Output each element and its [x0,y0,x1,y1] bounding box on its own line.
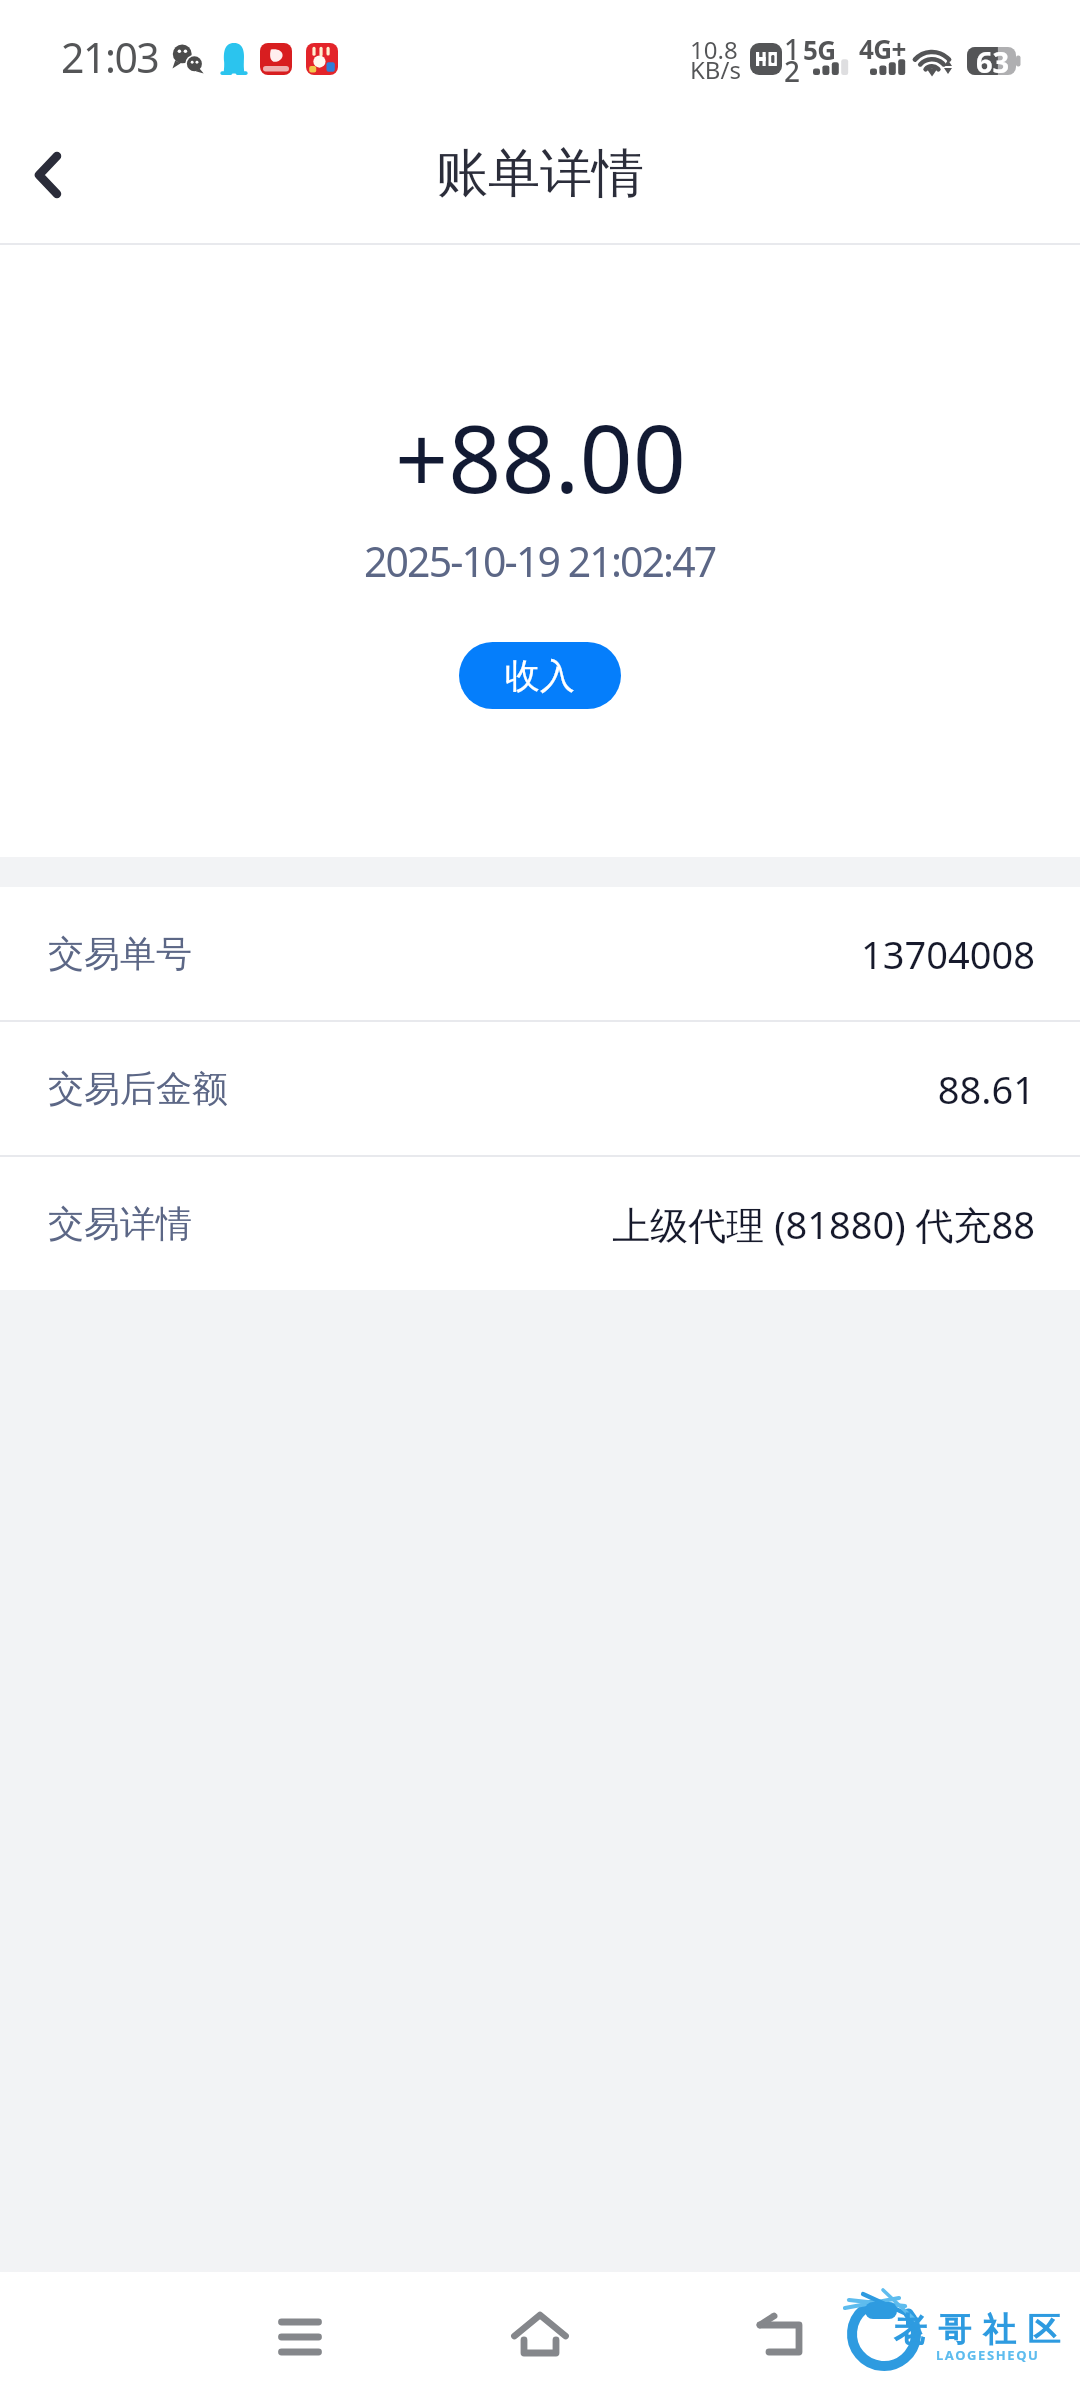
button[interactable]: 交易单号 [0,887,1080,1020]
staticText: 88.61 [937,1063,1035,1115]
button[interactable]: 收入 [459,642,621,709]
button[interactable]: 交易详情 [0,1157,1080,1290]
button[interactable]: Back [720,2277,840,2397]
staticText: LAOGESHEQU [936,2346,1040,2364]
staticText: 5G [803,32,836,67]
staticText: 交易单号 [48,931,192,976]
staticText: 老哥社区 [888,2309,1066,2351]
staticText: 交易后金额 [48,1066,228,1111]
staticText: +88.00 [395,394,686,521]
staticText: 10.8 [690,33,738,66]
staticText: 上级代理 (81880) 代充88 [612,1198,1035,1250]
staticText: 4G+ [859,31,906,66]
staticText: KB/s [690,53,741,86]
staticText: 2025-10-19 21:02:47 [364,533,716,589]
button[interactable]: Home [480,2277,600,2397]
staticText: 2 [784,52,801,90]
button[interactable]: 交易后金额 [0,1022,1080,1155]
staticText: 1 [784,30,801,68]
staticText: 收入 [505,654,575,698]
staticText: 交易详情 [48,1201,192,1246]
staticText: 账单详情 [436,141,644,207]
staticText: 21:03 [61,29,159,85]
button[interactable]: Back [0,120,102,230]
button[interactable]: Recent apps [240,2277,360,2397]
staticText: 63 [976,42,1010,81]
staticText: 13704008 [861,928,1035,980]
